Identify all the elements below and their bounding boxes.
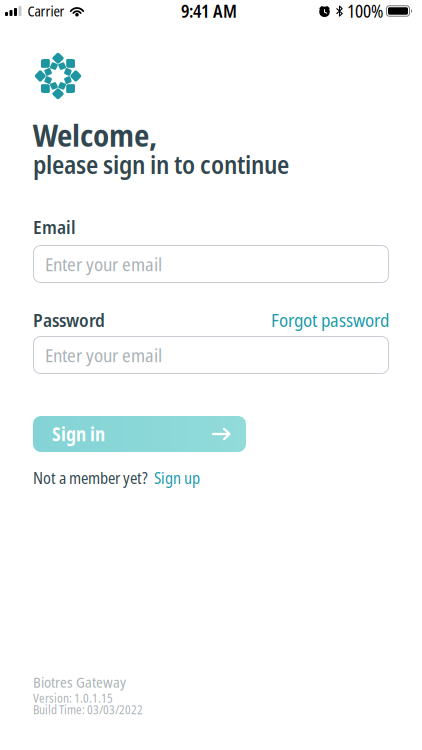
staticText: please sign in to continue bbox=[33, 147, 289, 181]
staticText: Version: 1.0.1.15 bbox=[33, 690, 113, 706]
staticText: Welcome, bbox=[33, 114, 157, 156]
staticText: Email bbox=[33, 214, 76, 239]
staticText: 9:41 AM bbox=[181, 0, 237, 23]
staticText: Not a member yet? bbox=[33, 467, 148, 489]
staticText: Sign up bbox=[154, 467, 200, 489]
staticText: Enter your email bbox=[45, 251, 162, 277]
textField[interactable]: Enter your email bbox=[45, 342, 389, 368]
staticText: Password bbox=[33, 307, 105, 332]
staticText: Enter your email bbox=[45, 251, 162, 277]
staticText: Enter your email bbox=[45, 342, 162, 368]
staticText: 100% bbox=[347, 0, 383, 23]
staticText: Build Time: 03/03/2022 bbox=[33, 701, 143, 718]
staticText: Biotres Gateway bbox=[33, 672, 126, 692]
staticText: Forgot password bbox=[271, 307, 389, 332]
staticText: Sign in bbox=[52, 421, 105, 447]
button[interactable]: Sign in bbox=[33, 416, 246, 452]
textField[interactable]: Enter your email bbox=[45, 251, 389, 277]
button[interactable]: Sign up bbox=[154, 467, 200, 481]
button[interactable]: Forgot password bbox=[271, 307, 389, 324]
staticText: Carrier bbox=[27, 1, 64, 21]
staticText: Enter your email bbox=[45, 342, 162, 368]
